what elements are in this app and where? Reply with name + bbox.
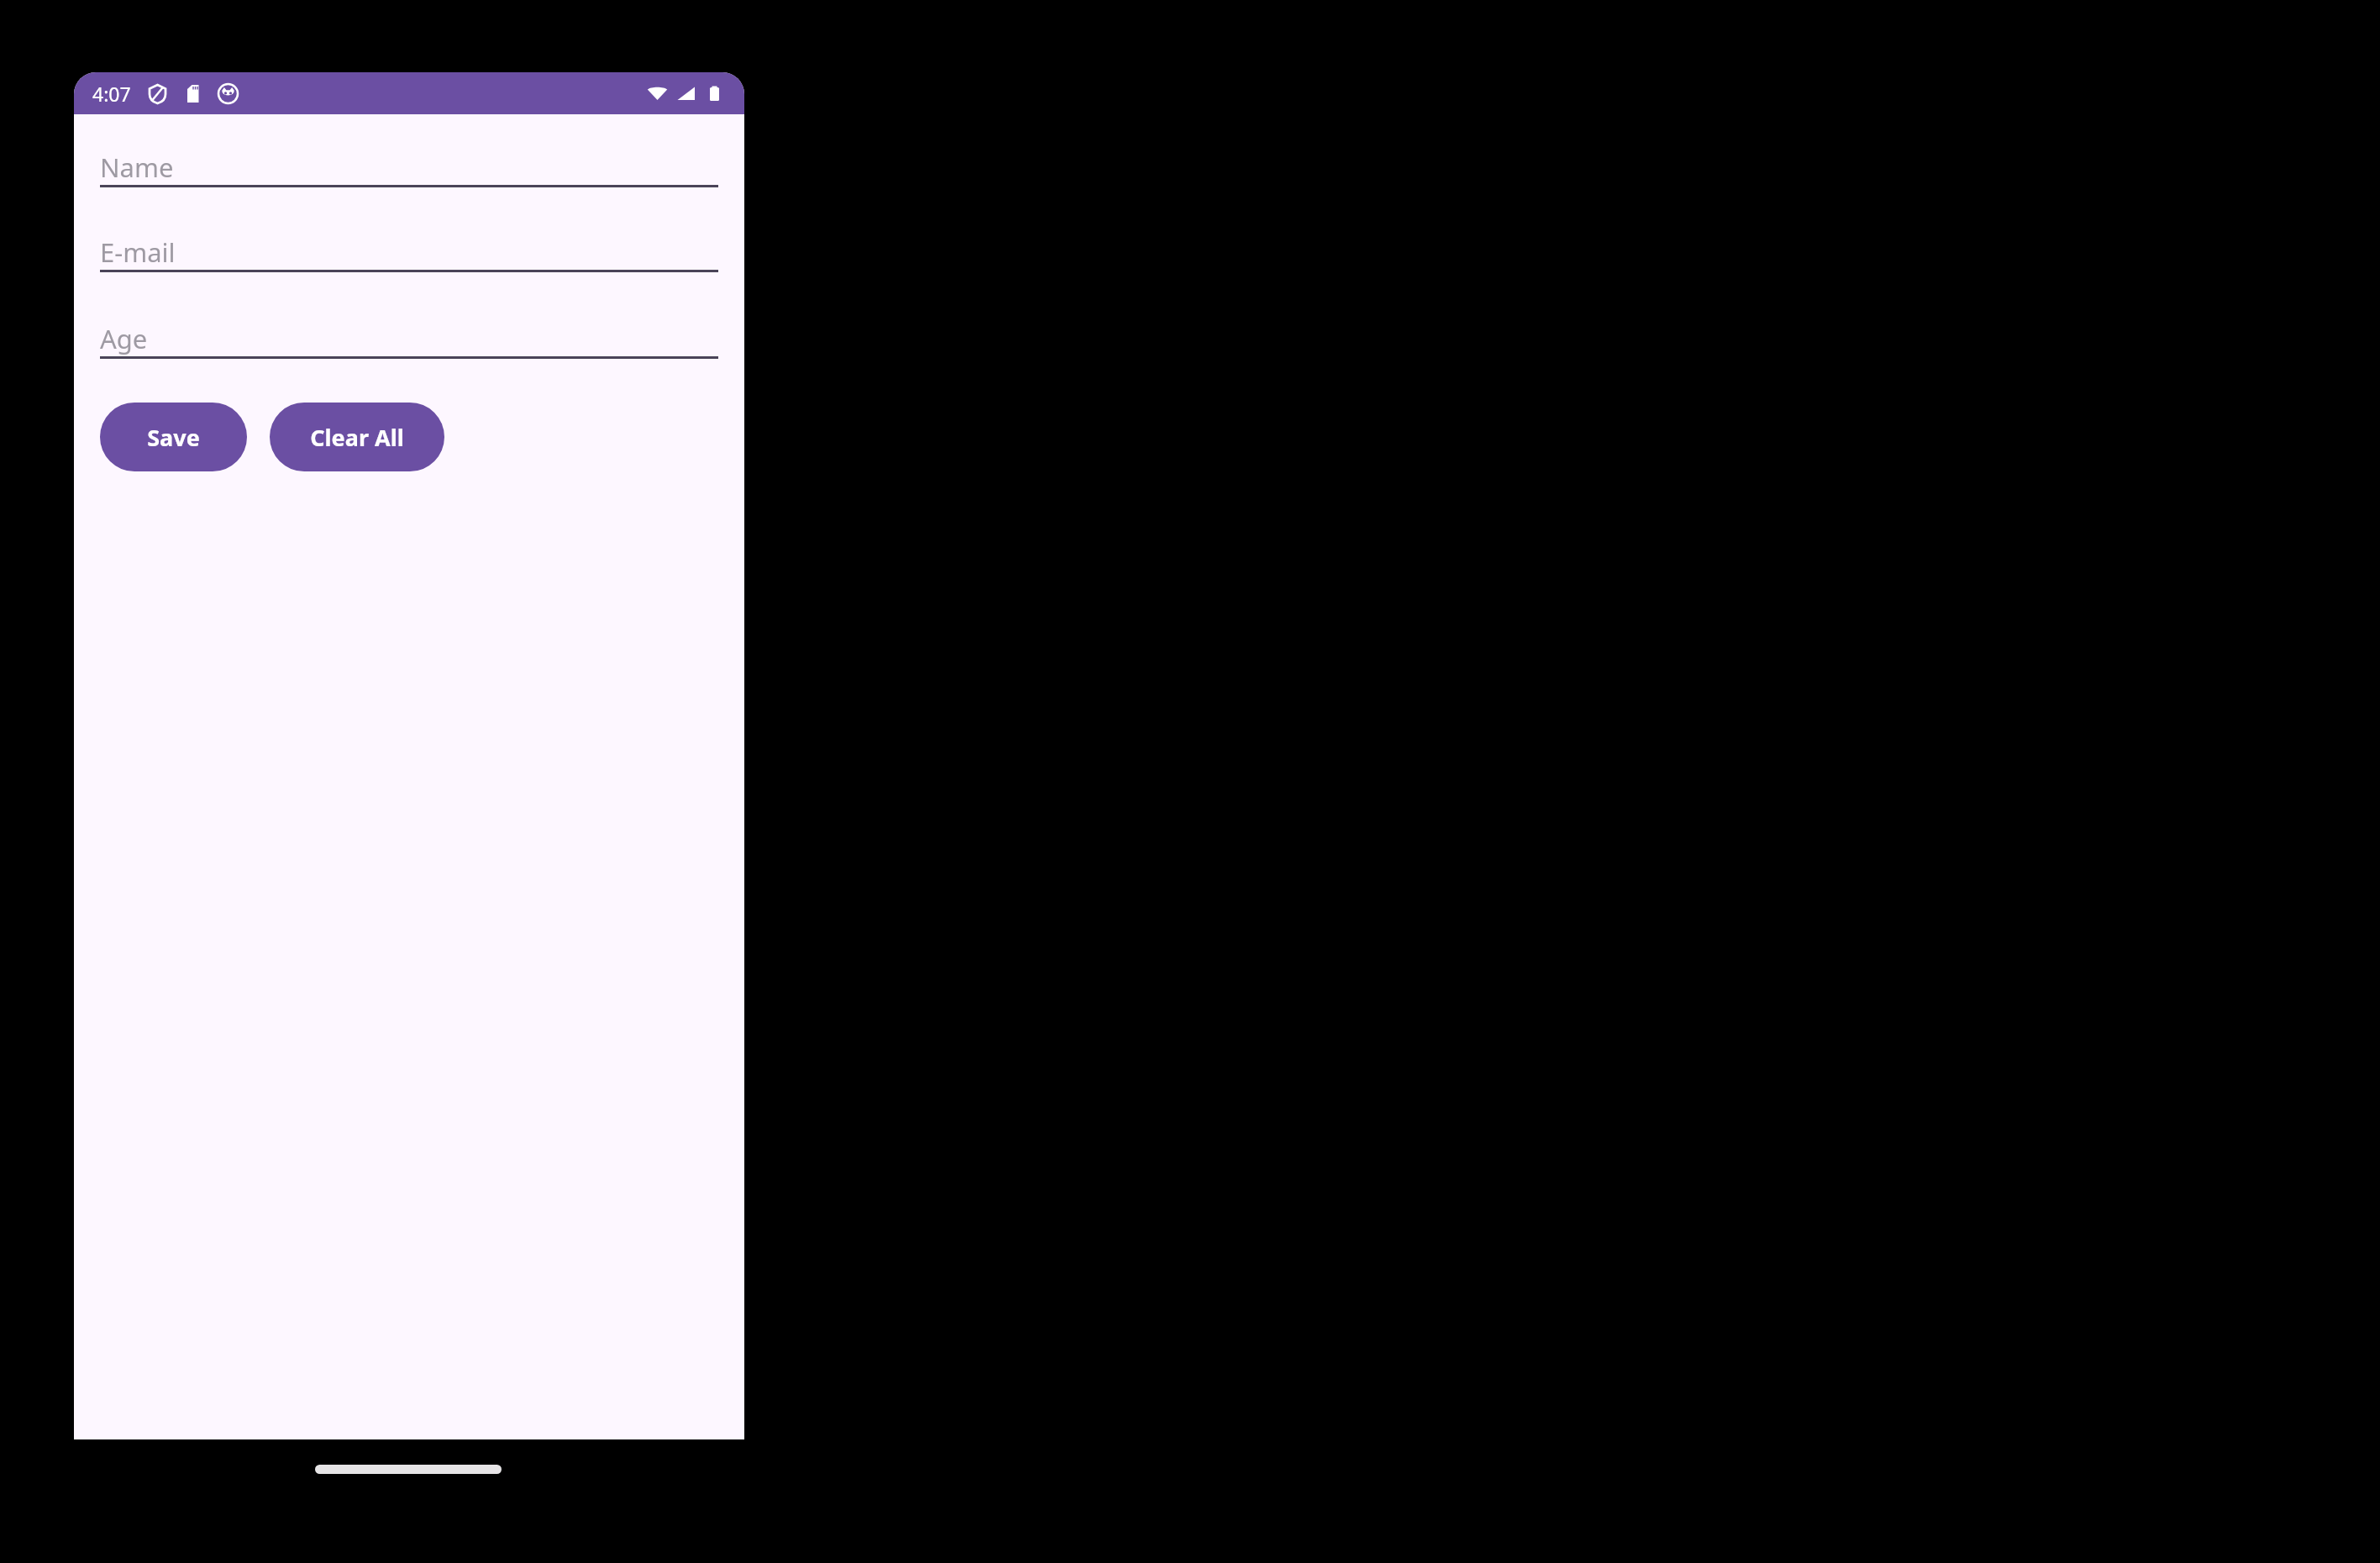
button[interactable]: Clear All (270, 403, 444, 471)
staticText: Save (147, 422, 200, 453)
button[interactable]: Save (100, 403, 247, 471)
button[interactable]: E-mail (100, 234, 718, 272)
button[interactable]: Age (100, 321, 718, 359)
other: Battery (704, 83, 725, 104)
staticText: Name (100, 150, 174, 185)
other: Mobile signal (675, 83, 696, 104)
staticText: 4:07 (92, 81, 131, 107)
other: SD card (182, 83, 203, 104)
staticText: Age (100, 321, 148, 356)
other: Security (147, 83, 168, 104)
other: App notification (218, 83, 239, 104)
button[interactable]: Name (100, 150, 718, 187)
staticText: Clear All (310, 422, 404, 453)
other: Wi-Fi (647, 83, 668, 104)
staticText: E-mail (100, 234, 176, 270)
